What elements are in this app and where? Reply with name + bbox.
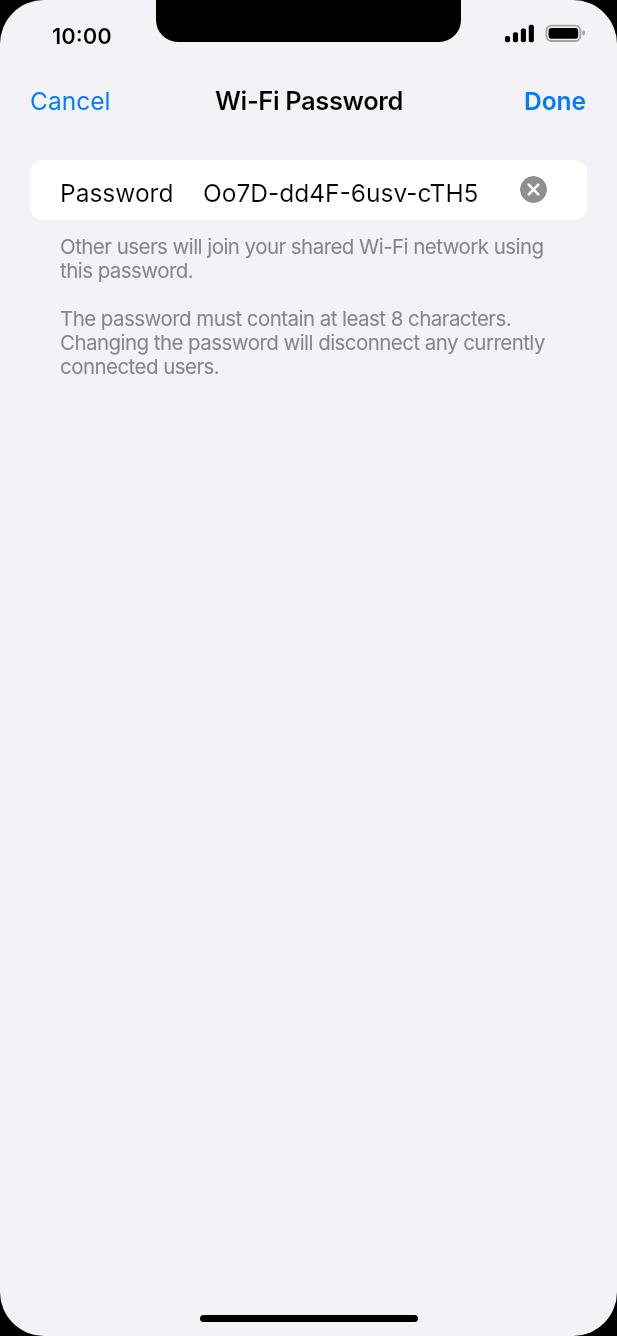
staticText: Oo7D-dd4F-6usv-cTH5 <box>203 178 479 208</box>
staticText: Password <box>60 178 174 208</box>
button[interactable]: Done <box>536 76 599 106</box>
staticText: Done <box>524 86 587 116</box>
button[interactable]: Cancel <box>18 76 99 106</box>
button[interactable]: Password <box>30 160 587 220</box>
staticText: Cancel <box>30 86 111 116</box>
staticText: Other users will join your shared Wi-Fi … <box>60 234 545 379</box>
button[interactable] <box>520 176 547 203</box>
staticText: Wi-Fi Password <box>215 85 403 116</box>
staticText: 10:00 <box>52 23 112 50</box>
